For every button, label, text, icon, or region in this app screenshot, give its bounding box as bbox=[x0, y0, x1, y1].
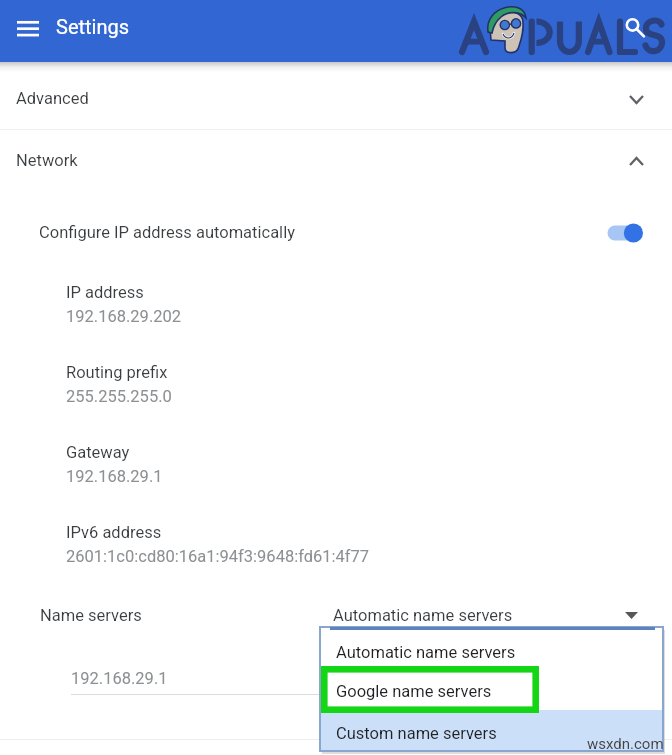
button[interactable]: Advanced bbox=[0, 68, 672, 129]
staticText: 192.168.29.202 bbox=[66, 307, 182, 326]
staticText: Automatic name servers bbox=[336, 643, 516, 662]
staticText: 192.168.29.1 bbox=[66, 467, 163, 486]
button[interactable]: 192.168.29.1 bbox=[71, 669, 321, 695]
button[interactable]: Automatic name servers bbox=[333, 604, 643, 634]
staticText: Routing prefix bbox=[66, 363, 168, 382]
staticText: Custom name servers bbox=[336, 724, 497, 743]
button[interactable]: Menu bbox=[5, 6, 50, 51]
button[interactable]: Google name servers bbox=[320, 670, 663, 710]
button[interactable]: Configure IP address automatically bbox=[0, 219, 672, 247]
staticText: Advanced bbox=[16, 89, 89, 108]
staticText: Configure IP address automatically bbox=[39, 223, 295, 242]
button[interactable]: Search bbox=[616, 9, 658, 51]
button[interactable]: Network bbox=[0, 130, 672, 191]
staticText: IPv6 address bbox=[66, 523, 162, 542]
staticText: 2601:1c0:cd80:16a1:94f3:9648:fd61:4f77 bbox=[66, 547, 370, 566]
staticText: IP address bbox=[66, 283, 144, 302]
staticText: Automatic name servers bbox=[333, 606, 513, 625]
button[interactable]: Custom name servers bbox=[320, 710, 663, 751]
staticText: wsxdn.com bbox=[587, 735, 664, 753]
staticText: Name servers bbox=[40, 606, 142, 625]
staticText: Gateway bbox=[66, 443, 130, 462]
button[interactable]: Automatic name servers bbox=[320, 627, 663, 670]
staticText: 255.255.255.0 bbox=[66, 387, 172, 406]
staticText: Google name servers bbox=[336, 682, 492, 701]
staticText: 192.168.29.1 bbox=[71, 669, 168, 688]
staticText: Settings bbox=[56, 15, 130, 38]
staticText: Network bbox=[16, 151, 78, 170]
